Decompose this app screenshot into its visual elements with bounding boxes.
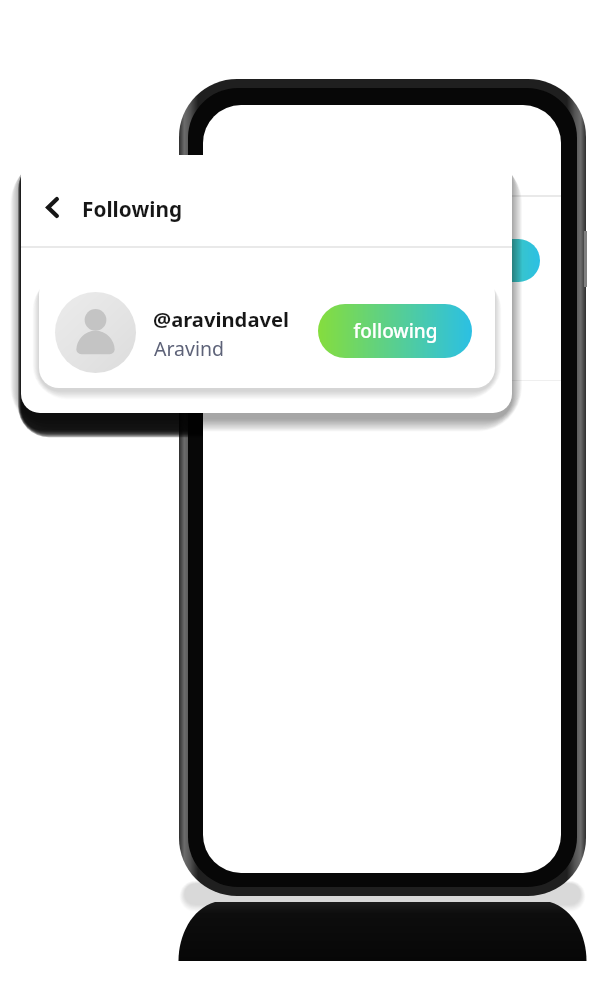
button[interactable] [219,216,559,304]
staticText: @aravindavel [153,305,290,333]
button[interactable]: Back [30,185,74,229]
staticText: Following [82,195,183,223]
button[interactable]: following [318,304,472,358]
staticText: following [353,318,438,344]
button[interactable] [39,274,495,388]
staticText: Aravind [154,335,225,362]
